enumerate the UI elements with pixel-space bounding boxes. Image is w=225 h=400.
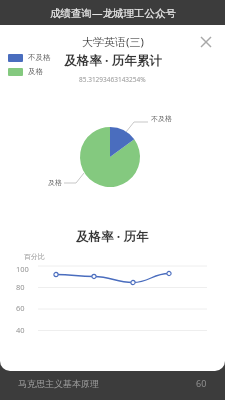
button[interactable]: 不及格 [8, 53, 51, 62]
staticText: 60 [196, 377, 207, 389]
staticText: 百分比 [24, 252, 45, 261]
staticText: 大学英语(三) [82, 34, 144, 49]
staticText: 85.31293463143254% [79, 75, 146, 84]
staticText: 不及格 [151, 114, 172, 123]
staticText: 100 [16, 264, 29, 274]
button[interactable]: 马克思主义基本原理 [18, 366, 207, 400]
staticText: 40 [16, 325, 25, 335]
staticText: 马克思主义基本原理 [18, 378, 99, 389]
staticText: 60 [16, 303, 25, 313]
staticText: 及格率 · 历年 [76, 228, 149, 245]
staticText: 80 [16, 282, 25, 292]
button[interactable]: Close [195, 31, 217, 53]
staticText: 及格 [48, 178, 62, 187]
staticText: 成绩查询—龙城理工公众号 [50, 6, 176, 20]
staticText: 不及格 [28, 53, 51, 62]
button[interactable]: 及格 [8, 67, 43, 76]
staticText: 及格 [28, 67, 43, 76]
staticText: 及格率 · 历年累计 [64, 52, 162, 69]
